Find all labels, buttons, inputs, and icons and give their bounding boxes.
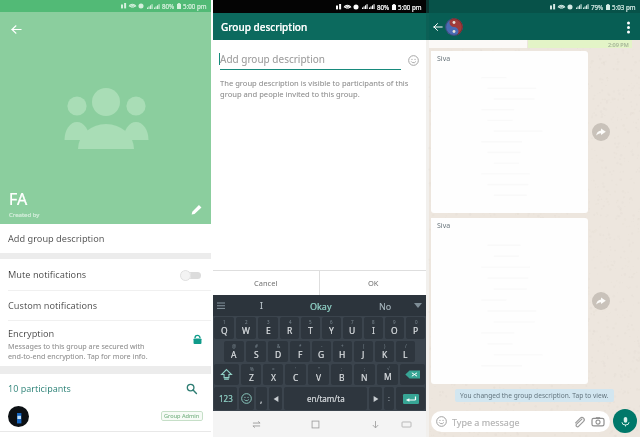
button[interactable]: 0: [406, 317, 425, 339]
button[interactable]: Back: [431, 20, 445, 34]
staticText: =: [272, 366, 275, 372]
staticText: 6: [330, 319, 333, 325]
staticText: +: [341, 343, 344, 349]
button[interactable]: Siva: [431, 218, 588, 384]
button[interactable]: Edit: [186, 199, 206, 219]
staticText: 10 participants: [8, 382, 71, 394]
button[interactable]: &: [268, 341, 288, 362]
staticText: %: [250, 366, 254, 372]
button[interactable]: 1: [214, 317, 234, 339]
button[interactable]: Attach: [573, 416, 585, 428]
button[interactable]: 5: [301, 317, 320, 339]
button[interactable]: You changed the group description. Tap t…: [455, 389, 614, 402]
button[interactable]: Backspace: [400, 364, 425, 385]
button[interactable]: Camera: [592, 416, 604, 428]
button[interactable]: Shift: [214, 364, 239, 385]
staticText: K: [382, 349, 388, 361]
button[interactable]: Home: [308, 417, 322, 431]
staticText: Group description: [221, 20, 308, 34]
staticText: I: [372, 325, 375, 337]
button[interactable]: 6: [322, 317, 341, 339]
staticText: H: [339, 349, 346, 361]
staticText: 8: [372, 319, 375, 325]
staticText: V: [316, 372, 322, 384]
staticText: Siva: [437, 54, 451, 64]
button[interactable]: #: [246, 341, 266, 362]
button[interactable]: Type a message: [431, 411, 610, 432]
staticText: √: [387, 366, 390, 371]
staticText: E: [266, 325, 271, 337]
button[interactable]: :: [384, 387, 394, 410]
button[interactable]: Cancel: [213, 271, 319, 295]
button[interactable]: Emoji: [239, 387, 254, 410]
staticText: ;: [364, 366, 366, 372]
button[interactable]: %: [241, 364, 261, 385]
button[interactable]: Mute notifications: [0, 259, 211, 290]
staticText: 9: [393, 319, 396, 325]
button[interactable]: Back: [5, 18, 27, 40]
button[interactable]: ,: [256, 387, 267, 410]
button[interactable]: ': [285, 364, 306, 385]
button[interactable]: Back: [368, 417, 382, 431]
staticText: /: [405, 343, 407, 349]
staticText: 0: [415, 319, 418, 325]
button[interactable]: Add group description: [0, 224, 211, 253]
staticText: 4: [289, 319, 292, 325]
staticText: Type a message: [452, 416, 520, 428]
button[interactable]: -: [312, 341, 331, 362]
staticText: L: [403, 349, 408, 361]
button[interactable]: 8: [364, 317, 383, 339]
button[interactable]: Next: [369, 387, 382, 410]
button[interactable]: √: [377, 364, 398, 385]
button[interactable]: 7: [343, 317, 362, 339]
staticText: ": [318, 366, 320, 372]
staticText: I: [260, 300, 263, 311]
button[interactable]: ;: [354, 364, 375, 385]
button[interactable]: 9: [385, 317, 404, 339]
button[interactable]: =: [263, 364, 283, 385]
button[interactable]: 2: [236, 317, 256, 339]
button[interactable]: 3: [258, 317, 278, 339]
button[interactable]: More options: [620, 19, 636, 35]
button[interactable]: 123: [214, 387, 237, 410]
button[interactable]: OK: [320, 271, 426, 295]
button[interactable]: Custom notifications: [0, 291, 211, 320]
button[interactable]: Forward: [592, 123, 610, 141]
staticText: S: [254, 349, 259, 361]
button[interactable]: Forward: [592, 292, 610, 310]
button[interactable]: Group profile photo: [445, 18, 463, 36]
button[interactable]: Enter: [396, 387, 425, 410]
staticText: Y: [329, 325, 334, 337]
button[interactable]: ": [308, 364, 329, 385]
staticText: T: [308, 325, 313, 337]
button[interactable]: en/tam/ta: [284, 387, 367, 410]
staticText: 5:03 pm: [612, 3, 636, 11]
staticText: Encryption: [8, 327, 55, 340]
staticText: Cancel: [254, 278, 278, 288]
button[interactable]: +: [333, 341, 352, 362]
button[interactable]: Previous: [269, 387, 282, 410]
button[interactable]: Group Admin: [0, 401, 211, 431]
staticText: FA: [9, 188, 28, 210]
staticText: *: [299, 343, 302, 349]
button[interactable]: @: [224, 341, 244, 362]
button[interactable]: *: [290, 341, 310, 362]
button[interactable]: Search: [183, 380, 199, 396]
button[interactable]: 4: [280, 317, 299, 339]
button[interactable]: Recents: [249, 417, 263, 431]
button[interactable]: Siva: [431, 51, 588, 213]
staticText: Add group description: [220, 52, 326, 66]
button[interactable]: :: [331, 364, 352, 385]
staticText: Created by: [9, 211, 40, 219]
button[interactable]: /: [396, 341, 415, 362]
button[interactable]: Emoji: [407, 54, 420, 67]
staticText: P: [413, 325, 419, 337]
staticText: 79%: [591, 3, 604, 11]
button[interactable]: Keyboard: [399, 417, 413, 431]
button[interactable]: Encryption: [0, 321, 211, 366]
button[interactable]: Voice message: [613, 409, 637, 433]
button[interactable]: (: [354, 341, 373, 362]
button[interactable]: ): [375, 341, 394, 362]
staticText: 2:09 PM: [608, 41, 629, 48]
button[interactable]: 10 participants: [0, 374, 211, 401]
